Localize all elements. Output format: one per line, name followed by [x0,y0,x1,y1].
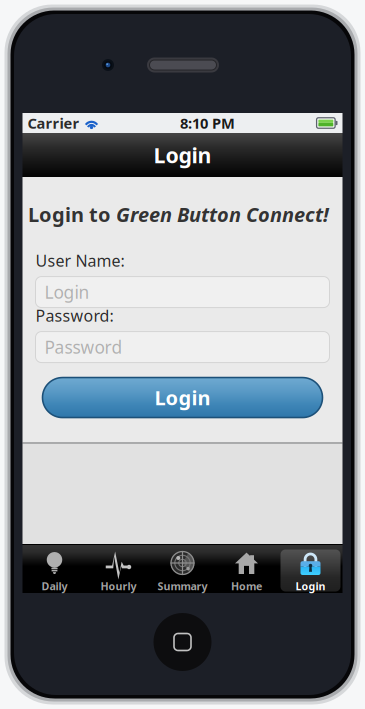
button[interactable]: Summary [150,544,214,593]
button[interactable]: Login [278,544,342,593]
button[interactable]: Login [35,277,329,308]
button[interactable]: Daily [22,544,86,593]
staticText: Carrier [27,113,79,133]
button[interactable]: Hourly [86,544,150,593]
staticText: Login [154,384,210,411]
staticText: Home [231,579,262,593]
staticText: Login [44,281,89,304]
button[interactable]: Password [35,332,329,363]
staticText: Summary [157,579,207,593]
staticText: User Name: [35,250,124,271]
button[interactable]: Home [214,544,278,593]
staticText: 8:10 PM [180,113,235,133]
button[interactable]: Login [42,378,322,418]
staticText: Hourly [100,579,136,593]
staticText: Login [295,579,325,593]
staticText: Password [44,336,122,359]
staticText: Password: [35,305,113,326]
staticText: Daily [41,579,67,593]
staticText: Login [153,141,211,169]
staticText: Login to Green Button Connect! [28,201,329,228]
